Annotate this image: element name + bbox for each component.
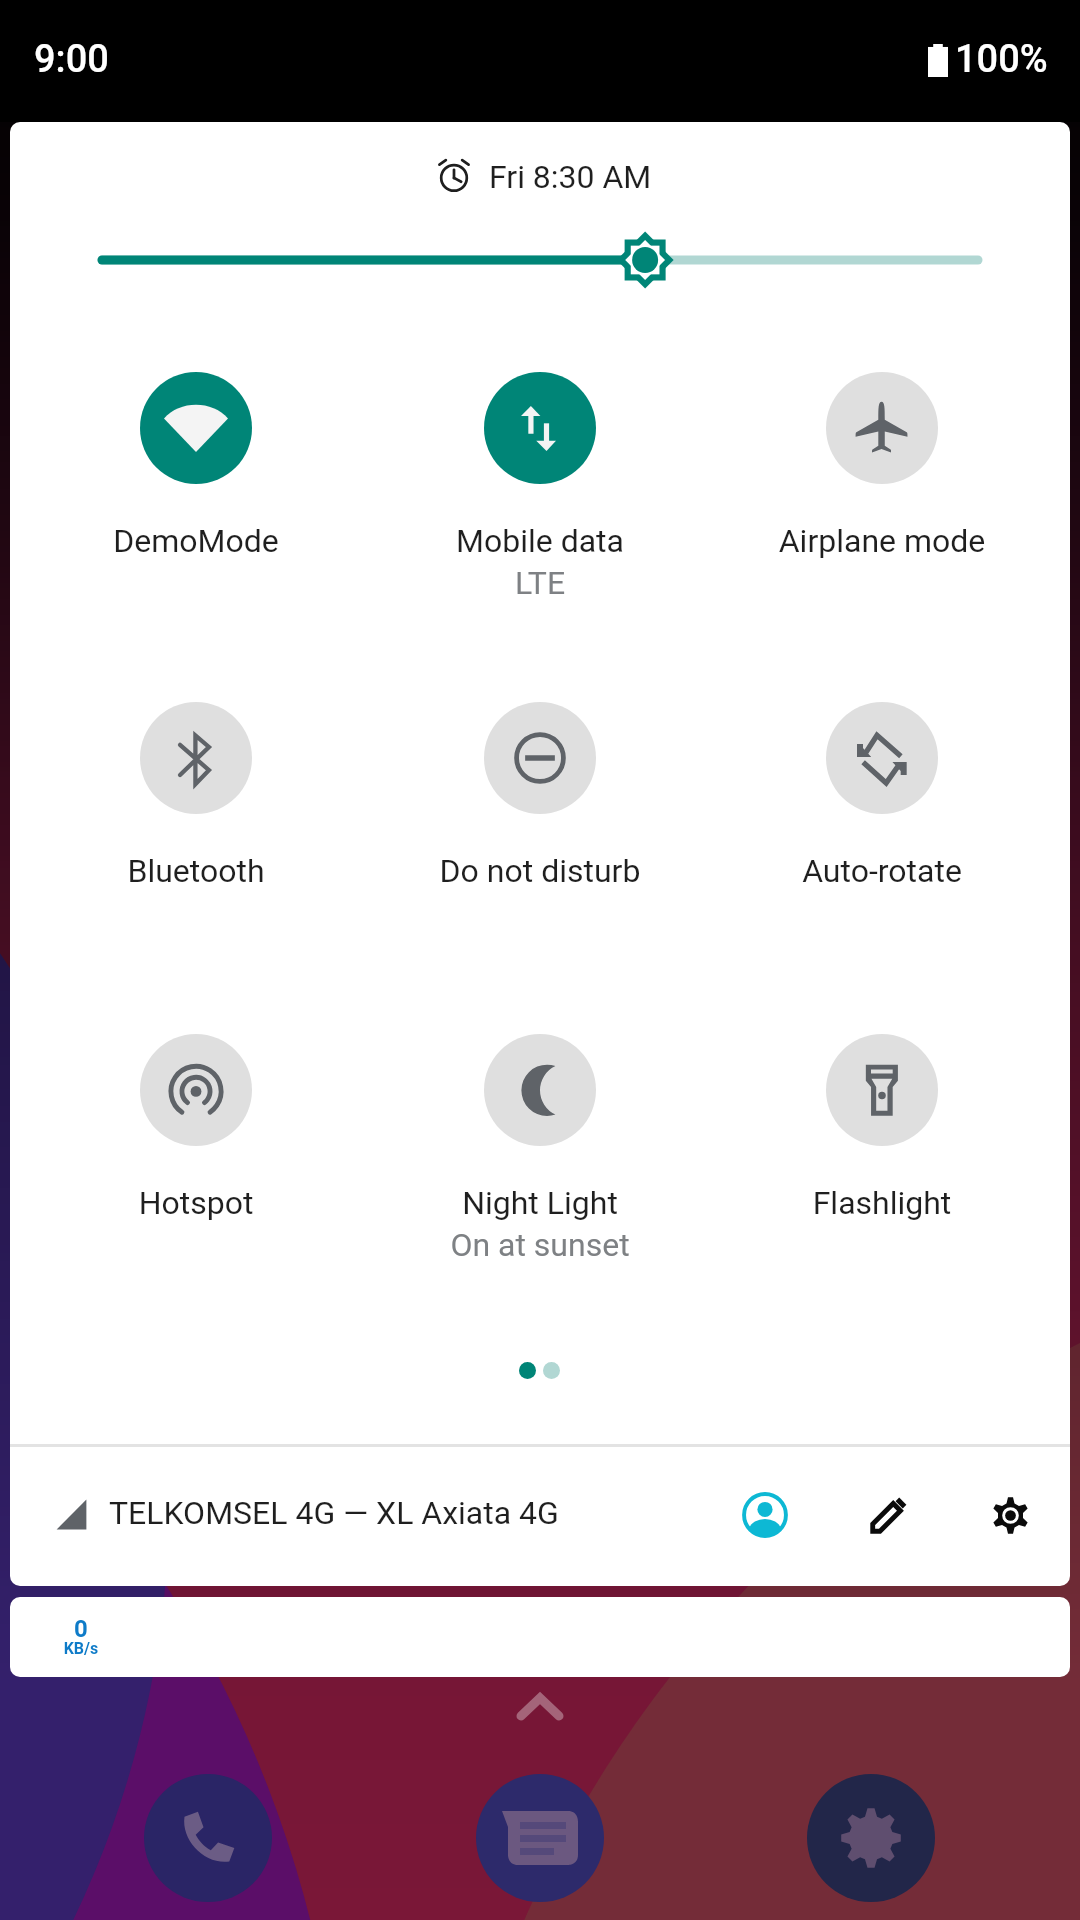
- staticText: Hotspot: [25, 1184, 367, 1222]
- staticText: On at sunset: [369, 1226, 711, 1264]
- button[interactable]: Hotspot: [25, 1028, 367, 1252]
- staticText: 0: [50, 1615, 112, 1643]
- button[interactable]: Settings: [964, 1469, 1056, 1561]
- staticText: Auto-rotate: [711, 852, 1053, 890]
- button[interactable]: Auto-rotate: [711, 696, 1053, 920]
- button[interactable]: Flashlight: [711, 1028, 1053, 1252]
- button[interactable]: DemoMode: [25, 366, 367, 590]
- staticText: 9:00: [34, 37, 109, 82]
- button[interactable]: Edit tiles: [844, 1468, 936, 1560]
- button[interactable]: User profile: [719, 1469, 811, 1561]
- staticText: Bluetooth: [25, 852, 367, 890]
- staticText: Flashlight: [711, 1184, 1053, 1222]
- button[interactable]: Mobile data: [369, 366, 711, 590]
- staticText: Do not disturb: [369, 852, 711, 890]
- staticText: 100%: [955, 37, 1048, 82]
- staticText: Night Light: [369, 1184, 711, 1222]
- staticText: TELKOMSEL 4G — XL Axiata 4G: [109, 1494, 559, 1532]
- staticText: Airplane mode: [711, 522, 1053, 560]
- staticText: Mobile data: [369, 522, 711, 560]
- button[interactable]: Night Light: [369, 1028, 711, 1252]
- button[interactable]: Do not disturb: [369, 696, 711, 920]
- staticText: Fri 8:30 AM: [489, 158, 652, 196]
- staticText: KB/s: [50, 1639, 112, 1658]
- button[interactable]: Bluetooth: [25, 696, 367, 920]
- staticText: DemoMode: [25, 522, 367, 560]
- button[interactable]: Airplane mode: [711, 366, 1053, 590]
- staticText: LTE: [369, 564, 711, 602]
